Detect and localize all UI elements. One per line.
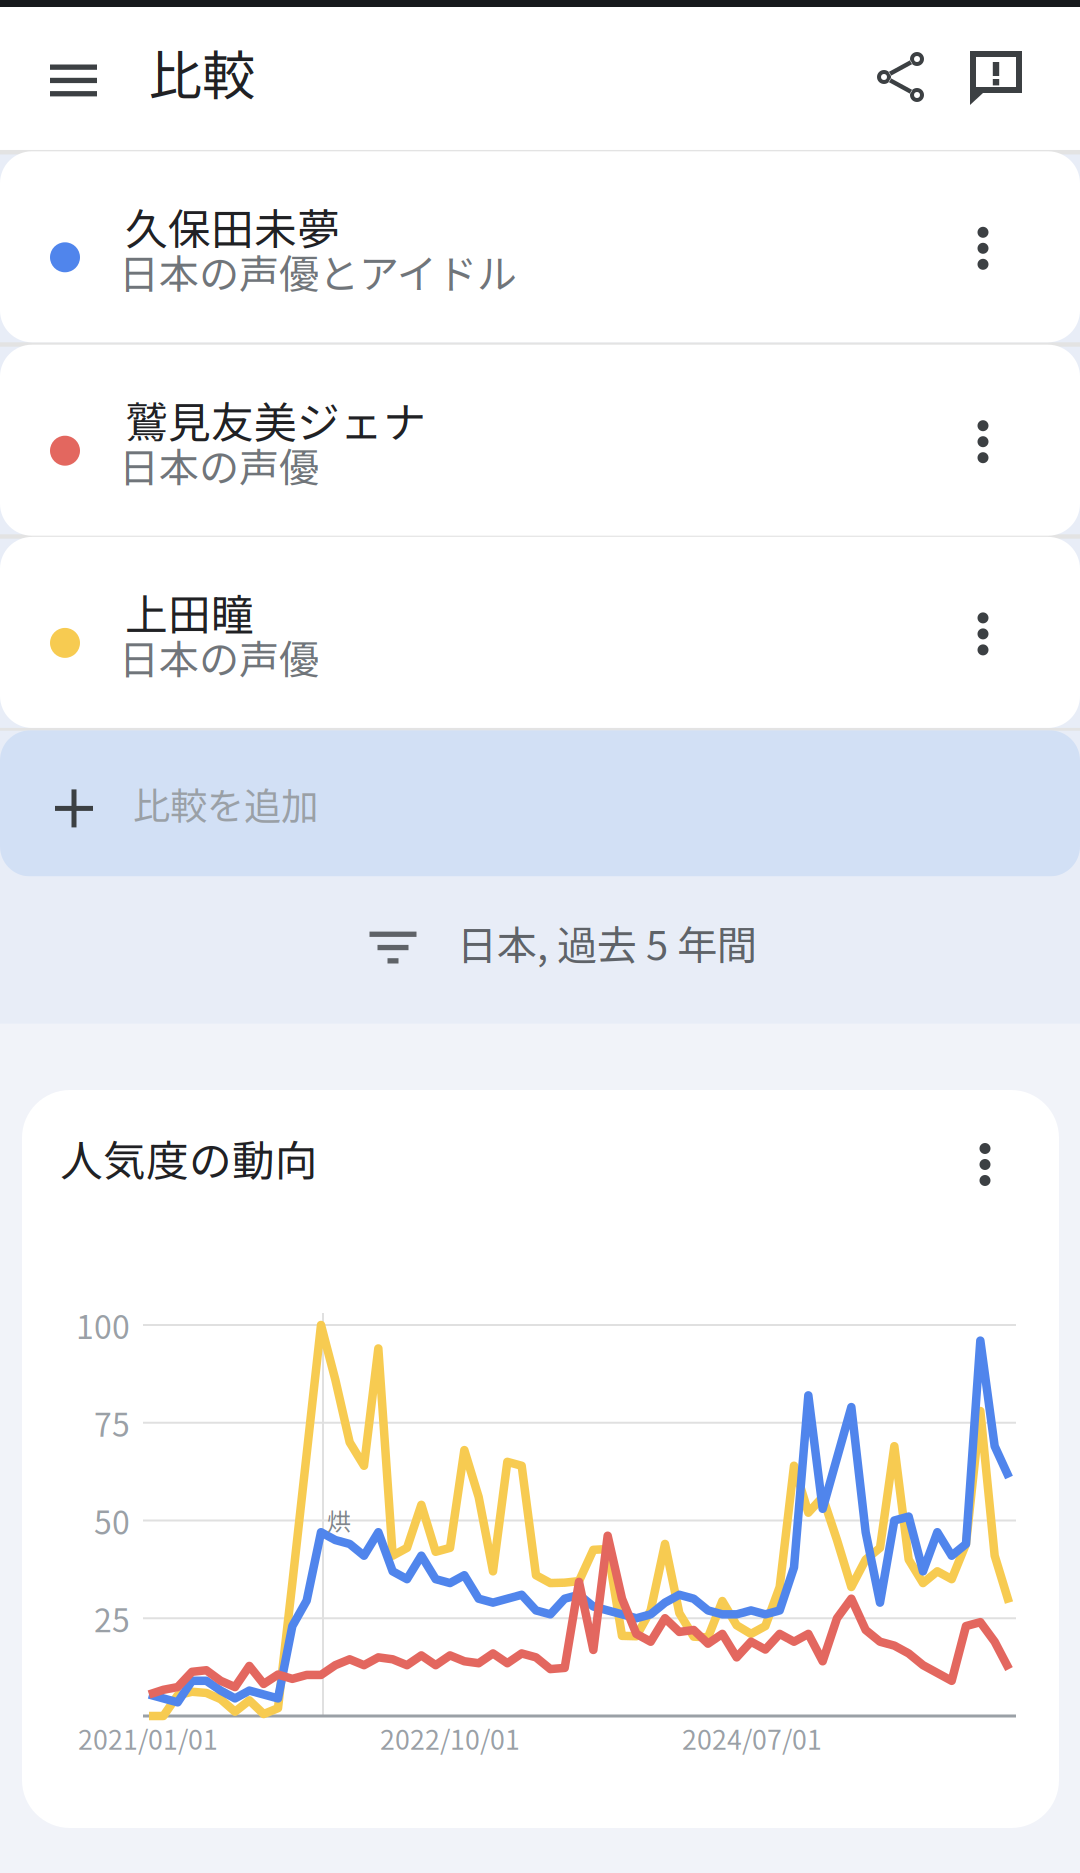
staticText: 久保田未夢 <box>125 195 340 257</box>
button[interactable]: Menu <box>22 36 125 124</box>
staticText: 日本の声優 <box>119 628 319 686</box>
staticText: 日本の声優 <box>119 436 319 494</box>
button[interactable]: 比較を追加 <box>0 730 1080 876</box>
staticText: 2024/07/01 <box>682 1719 822 1757</box>
staticText: 2021/01/01 <box>78 1719 218 1757</box>
button[interactable]: 鷲見友美ジェナ <box>0 345 1080 536</box>
staticText: 日本の声優とアイドル <box>119 242 517 300</box>
staticText: 日本, 過去 5 年間 <box>457 914 757 971</box>
staticText: 比較 <box>149 33 255 111</box>
button[interactable]: Chart options <box>959 1123 1010 1206</box>
staticText: 比較を追加 <box>133 776 318 830</box>
button[interactable]: 上田瞳 <box>0 537 1080 728</box>
button[interactable]: 日本, 過去 5 年間 <box>0 877 1080 1024</box>
staticText: 75 <box>94 1400 130 1446</box>
staticText: 50 <box>94 1497 130 1544</box>
button[interactable]: Send feedback <box>954 35 1038 121</box>
staticText: 人気度の動向 <box>60 1127 318 1189</box>
staticText: 上田瞳 <box>125 581 254 643</box>
button[interactable]: Share <box>859 33 943 121</box>
staticText: 25 <box>94 1595 130 1641</box>
staticText: 2022/10/01 <box>380 1719 520 1757</box>
staticText: 鷲見友美ジェナ <box>125 389 426 451</box>
staticText: 烘 <box>327 1503 351 1537</box>
button[interactable]: 久保田未夢 <box>0 151 1080 342</box>
staticText: 100 <box>76 1302 130 1348</box>
